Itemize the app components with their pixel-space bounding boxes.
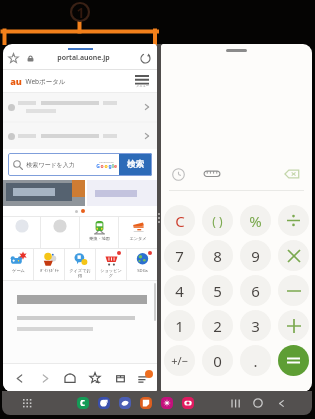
staticText: Webポータル xyxy=(25,77,66,86)
staticText: 1 xyxy=(175,316,184,336)
button[interactable]: 2 xyxy=(202,310,233,341)
button[interactable] xyxy=(87,180,157,206)
button[interactable]: +/− xyxy=(164,345,195,376)
button[interactable]: ﾎﾟｲﾝﾄｶﾞﾁｬ xyxy=(34,249,64,280)
staticText: 9 xyxy=(251,246,260,266)
button[interactable]: ゲーム xyxy=(3,249,33,280)
button[interactable]: クイズでお 得 xyxy=(65,249,95,280)
staticText: 7 xyxy=(175,246,184,266)
button[interactable]: 7 xyxy=(164,240,195,271)
button[interactable]: Recents xyxy=(226,394,244,412)
staticText: ( ) xyxy=(212,213,223,229)
staticText: au xyxy=(10,75,22,87)
staticText: o xyxy=(104,163,108,170)
staticText: e xyxy=(114,163,117,170)
button[interactable]: Menu xyxy=(137,372,150,385)
staticText: 検索ワードを入力 xyxy=(26,161,75,169)
staticText: 検索 xyxy=(127,159,144,170)
button[interactable]: 乗換・地図 xyxy=(80,217,118,248)
button[interactable]: C xyxy=(164,205,195,236)
staticText: ショッピン グ xyxy=(100,268,122,278)
button[interactable]: Home xyxy=(249,394,267,412)
staticText: 2 xyxy=(213,316,222,336)
button[interactable]: Unit converter xyxy=(203,165,221,183)
staticText: 0 xyxy=(213,351,222,371)
button[interactable]: × xyxy=(278,240,309,271)
staticText: 6 xyxy=(251,281,260,301)
staticText: 4 xyxy=(175,281,184,301)
button[interactable] xyxy=(3,93,157,121)
button[interactable]: 5 xyxy=(202,275,233,306)
button[interactable]: All apps xyxy=(23,399,32,408)
button[interactable]: App xyxy=(140,397,152,409)
staticText: 5 xyxy=(213,281,222,301)
staticText: +/− xyxy=(171,353,188,368)
button[interactable]: Back xyxy=(272,394,290,412)
button[interactable]: 4 xyxy=(164,275,195,306)
staticText: SDGs xyxy=(137,268,148,274)
button[interactable]: Bookmarks xyxy=(86,369,104,387)
button[interactable]: = xyxy=(278,345,309,376)
button[interactable] xyxy=(41,217,79,248)
button[interactable]: SDGs xyxy=(127,249,157,280)
button[interactable]: ショッピン グ xyxy=(96,249,126,280)
button[interactable]: 6 xyxy=(240,275,271,306)
button[interactable] xyxy=(3,180,85,206)
button[interactable]: % xyxy=(240,205,271,236)
staticText: l xyxy=(112,163,114,170)
button[interactable]: Tabs xyxy=(111,369,129,387)
button[interactable]: + xyxy=(278,310,309,341)
button[interactable] xyxy=(3,217,40,248)
button[interactable] xyxy=(3,123,157,149)
button[interactable]: ÷ xyxy=(278,205,309,236)
button[interactable]: 0 xyxy=(202,345,233,376)
staticText: o xyxy=(100,163,104,170)
staticText: % xyxy=(249,211,262,231)
button[interactable]: App xyxy=(119,397,131,409)
staticText: ゲーム xyxy=(12,268,25,273)
button[interactable]: 1 xyxy=(164,310,195,341)
button[interactable]: − xyxy=(278,275,309,306)
staticText: enhanced by xyxy=(99,160,114,163)
staticText: クイズでお 得 xyxy=(69,268,91,278)
button[interactable]: ( ) xyxy=(202,205,233,236)
staticText: g xyxy=(108,163,112,170)
button[interactable]: 検索 xyxy=(119,153,152,176)
button[interactable]: 9 xyxy=(240,240,271,271)
staticText: C xyxy=(175,211,185,231)
button[interactable]: App xyxy=(161,397,173,409)
staticText: 1 xyxy=(76,3,85,22)
staticText: メニュー xyxy=(136,84,149,88)
staticText: . xyxy=(253,351,258,371)
staticText: 3 xyxy=(251,316,260,336)
staticText: 8 xyxy=(213,246,222,266)
button[interactable]: Home xyxy=(61,369,79,387)
button[interactable]: エンタメ xyxy=(119,217,157,248)
staticText: ﾎﾟｲﾝﾄｶﾞﾁｬ xyxy=(40,268,59,272)
button[interactable]: App xyxy=(77,397,89,409)
button[interactable]: . xyxy=(240,345,271,376)
button[interactable]: Reload xyxy=(140,53,151,64)
other: Secure xyxy=(27,55,34,62)
staticText: G xyxy=(96,163,100,170)
staticText: portal.auone.jp xyxy=(57,53,110,63)
staticText: 乗換・地図 xyxy=(89,236,110,241)
button[interactable]: Menu xyxy=(133,73,151,90)
button[interactable]: Bookmark xyxy=(8,53,19,64)
button[interactable]: 8 xyxy=(202,240,233,271)
button[interactable]: History xyxy=(172,168,185,181)
button[interactable]: Backspace xyxy=(284,166,300,182)
button[interactable]: App xyxy=(98,397,110,409)
button[interactable]: Forward xyxy=(36,369,54,387)
button[interactable]: App xyxy=(182,397,194,409)
staticText: エンタメ xyxy=(129,236,147,241)
button[interactable]: 3 xyxy=(240,310,271,341)
button[interactable]: Back xyxy=(10,369,28,387)
